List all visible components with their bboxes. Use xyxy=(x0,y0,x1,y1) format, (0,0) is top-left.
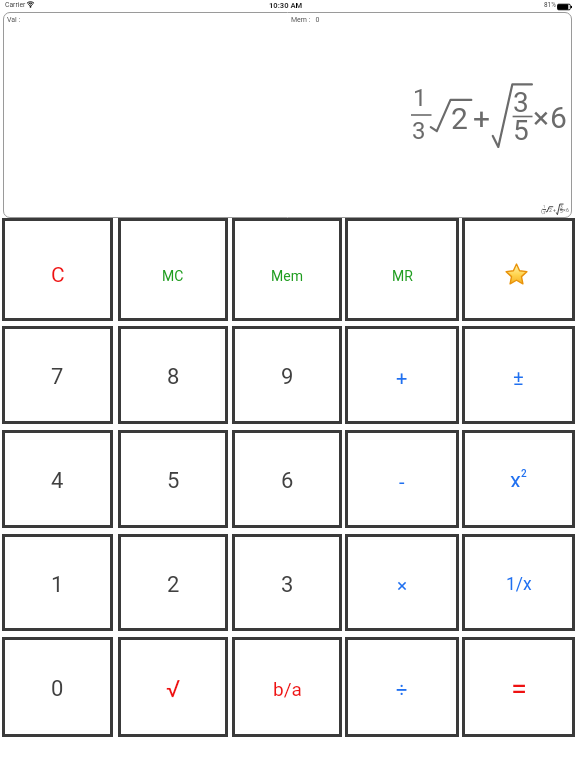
staticText: × xyxy=(533,100,550,135)
staticText: ÷ xyxy=(396,678,408,701)
staticText: 3 xyxy=(560,205,563,211)
button[interactable]: x xyxy=(462,430,575,528)
staticText: C xyxy=(51,263,65,288)
staticText: 9 xyxy=(281,364,294,390)
staticText: 2 xyxy=(451,101,468,136)
staticText: 4 xyxy=(51,468,64,494)
staticText: ( xyxy=(541,208,543,215)
staticText: 10:30 AM xyxy=(269,1,303,10)
button[interactable]: MC xyxy=(118,218,228,321)
staticText: + xyxy=(553,207,556,213)
button[interactable]: MR xyxy=(345,218,459,321)
staticText: x xyxy=(510,468,521,487)
button[interactable]: ± xyxy=(462,326,575,424)
button[interactable]: 0 xyxy=(2,637,113,737)
button[interactable]: C xyxy=(2,218,113,321)
staticText: 1/x xyxy=(506,574,532,595)
staticText: 7 xyxy=(51,364,64,390)
staticText: 6 xyxy=(281,468,294,494)
staticText: × xyxy=(563,207,566,213)
staticText: 1 xyxy=(543,204,546,209)
staticText: - xyxy=(399,470,405,493)
button[interactable]: Mem xyxy=(232,218,342,321)
staticText: Mem xyxy=(271,268,303,284)
staticText: MR xyxy=(392,268,413,284)
button[interactable]: 1 xyxy=(2,534,113,631)
button[interactable] xyxy=(462,218,575,321)
staticText: Mem : 0 xyxy=(291,16,320,24)
staticText: Carrier xyxy=(5,1,26,9)
staticText: 5 xyxy=(560,209,563,215)
button[interactable]: 7 xyxy=(2,326,113,424)
button[interactable]: 9 xyxy=(232,326,342,424)
staticText: + xyxy=(473,101,491,136)
staticText: 2 xyxy=(521,468,527,480)
button[interactable]: b/a xyxy=(232,637,342,737)
staticText: b/a xyxy=(273,678,302,700)
staticText: 3 xyxy=(513,86,529,119)
staticText: Val : xyxy=(7,16,21,24)
button[interactable]: 8 xyxy=(118,326,228,424)
button[interactable]: × xyxy=(345,534,459,631)
button[interactable]: 3 xyxy=(232,534,342,631)
staticText: 3 xyxy=(543,210,546,215)
staticText: 5 xyxy=(513,114,529,147)
staticText: × xyxy=(397,574,408,596)
staticText: ± xyxy=(513,366,524,389)
staticText: 1 xyxy=(413,84,427,112)
staticText: 1 xyxy=(51,572,64,598)
staticText: 3 xyxy=(281,572,294,598)
button[interactable]: ÷ xyxy=(345,637,459,737)
staticText: 6 xyxy=(566,207,569,213)
button[interactable]: 1/x xyxy=(462,534,575,631)
staticText: + xyxy=(396,366,408,389)
staticText: 81% xyxy=(544,1,556,9)
staticText: = xyxy=(511,672,527,706)
staticText: 5 xyxy=(167,468,180,494)
staticText: MC xyxy=(162,268,184,284)
staticText: 3 xyxy=(412,117,426,145)
button[interactable]: 2 xyxy=(118,534,228,631)
staticText: √ xyxy=(166,675,181,703)
button[interactable]: 4 xyxy=(2,430,113,528)
button[interactable]: + xyxy=(345,326,459,424)
staticText: 2 xyxy=(167,572,180,598)
button[interactable]: - xyxy=(345,430,459,528)
button[interactable]: = xyxy=(462,637,575,737)
button[interactable]: 6 xyxy=(232,430,342,528)
staticText: 8 xyxy=(167,364,180,390)
staticText: 0 xyxy=(51,676,64,702)
staticText: 2 xyxy=(549,207,552,213)
button[interactable]: 5 xyxy=(118,430,228,528)
staticText: 6 xyxy=(550,100,567,135)
button[interactable]: √ xyxy=(118,637,228,737)
